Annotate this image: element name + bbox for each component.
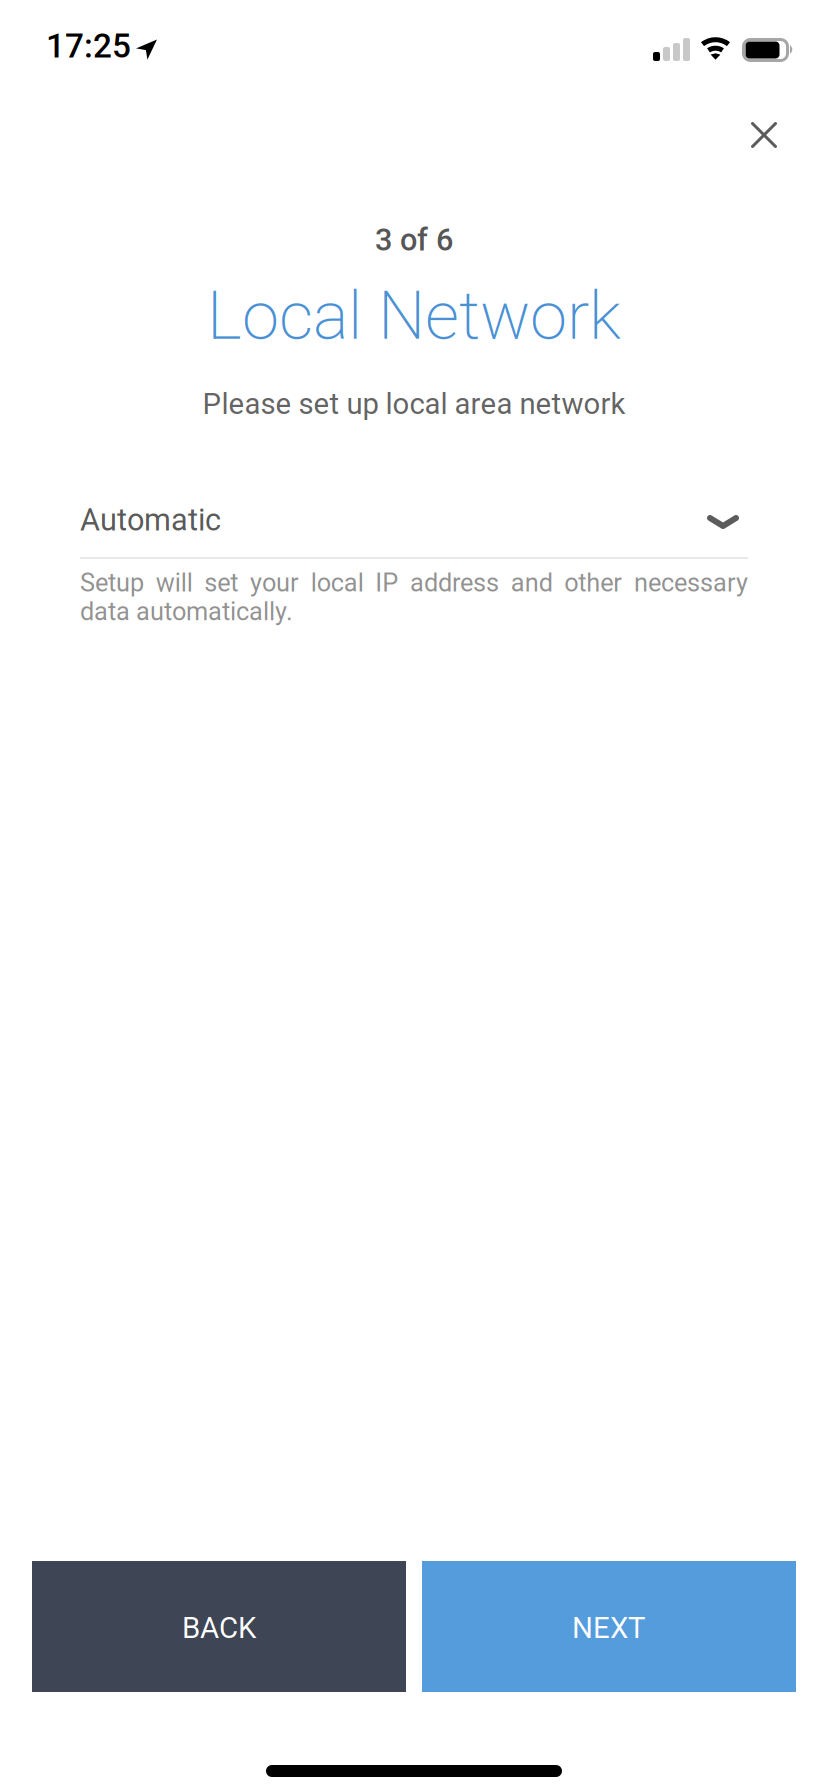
- staticText: Local Network: [207, 277, 621, 355]
- staticText: necessary: [634, 568, 748, 598]
- button[interactable]: Close: [729, 100, 799, 170]
- staticText: and: [511, 568, 553, 598]
- button[interactable]: Automatic: [80, 503, 748, 557]
- staticText: NEXT: [572, 1611, 646, 1645]
- staticText: Setup: [80, 568, 144, 598]
- button[interactable]: BACK: [32, 1561, 406, 1692]
- staticText: BACK: [182, 1611, 256, 1645]
- staticText: will: [156, 568, 193, 598]
- staticText: 17:25: [46, 26, 131, 66]
- staticText: set: [204, 568, 238, 598]
- staticText: data automatically.: [80, 597, 293, 626]
- staticText: Please set up local area network: [202, 387, 625, 421]
- staticText: Automatic: [80, 502, 221, 538]
- staticText: your: [250, 568, 299, 598]
- button[interactable]: NEXT: [422, 1561, 796, 1692]
- staticText: address: [410, 568, 499, 598]
- staticText: local: [311, 568, 364, 598]
- staticText: other: [564, 568, 622, 598]
- staticText: IP: [375, 568, 398, 598]
- staticText: 3 of 6: [375, 222, 453, 258]
